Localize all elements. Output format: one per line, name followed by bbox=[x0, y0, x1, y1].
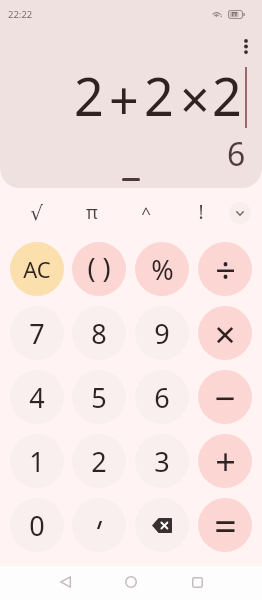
staticText: = bbox=[214, 498, 237, 552]
staticText: 0 bbox=[29, 507, 45, 544]
staticText: 5 bbox=[91, 379, 107, 416]
staticText: √ bbox=[30, 201, 43, 224]
button[interactable]: 8 bbox=[72, 306, 126, 360]
staticText: 2 bbox=[144, 60, 174, 131]
button[interactable]: × bbox=[198, 306, 252, 360]
button[interactable]: 0 bbox=[10, 498, 64, 552]
staticText: + bbox=[109, 64, 139, 135]
staticText: 7 bbox=[29, 315, 45, 352]
button[interactable]: 5 bbox=[72, 370, 126, 424]
button[interactable]: ^ bbox=[118, 189, 173, 235]
button[interactable]: 6 bbox=[135, 370, 189, 424]
staticText: 2 bbox=[212, 60, 242, 131]
staticText: 2 bbox=[91, 443, 107, 480]
button[interactable]: 3 bbox=[135, 434, 189, 488]
button[interactable]: 1 bbox=[10, 434, 64, 488]
staticText: 8 bbox=[91, 315, 107, 352]
staticText: % bbox=[151, 251, 174, 288]
staticText: 9 bbox=[154, 315, 170, 352]
button[interactable]: π bbox=[64, 189, 119, 235]
staticText: ^ bbox=[141, 201, 151, 224]
staticText: 4 bbox=[29, 379, 45, 416]
button[interactable]: 9 bbox=[135, 306, 189, 360]
button[interactable]: Expand keypad bbox=[229, 202, 251, 224]
button[interactable]: = bbox=[198, 498, 252, 552]
button[interactable]: 4 bbox=[10, 370, 64, 424]
button[interactable]: + bbox=[198, 434, 252, 488]
staticText: 1 bbox=[29, 443, 45, 480]
staticText: ÷ bbox=[215, 245, 236, 294]
button[interactable]: ! bbox=[173, 189, 228, 235]
staticText: AC bbox=[23, 254, 51, 284]
staticText: ( ) bbox=[87, 249, 111, 286]
staticText: + bbox=[215, 437, 236, 486]
button[interactable]: 7 bbox=[10, 306, 64, 360]
staticText: 3 bbox=[154, 443, 170, 480]
button[interactable]: √ bbox=[9, 189, 64, 235]
button[interactable]: ( ) bbox=[72, 242, 126, 296]
button[interactable]: Home bbox=[112, 563, 150, 600]
button[interactable]: 2 bbox=[72, 434, 126, 488]
button[interactable]: Back bbox=[46, 563, 84, 600]
staticText: 6 bbox=[227, 132, 246, 176]
button[interactable]: Recent apps bbox=[178, 563, 216, 600]
button[interactable]: Backspace bbox=[135, 498, 189, 552]
button[interactable]: AC bbox=[10, 242, 64, 296]
button[interactable]: − bbox=[198, 370, 252, 424]
button[interactable]: More options bbox=[232, 32, 260, 60]
button[interactable]: ÷ bbox=[198, 242, 252, 296]
staticText: × bbox=[214, 308, 236, 358]
staticText: − bbox=[214, 372, 236, 422]
staticText: π bbox=[86, 200, 98, 225]
staticText: 22:22 bbox=[8, 8, 33, 21]
button[interactable]: % bbox=[135, 242, 189, 296]
button[interactable]: Drag handle bbox=[122, 178, 140, 181]
staticText: 6 bbox=[154, 379, 170, 416]
staticText: 2 bbox=[74, 60, 104, 131]
staticText: × bbox=[180, 63, 210, 134]
button[interactable]: Decimal separator bbox=[72, 498, 126, 552]
staticText: ! bbox=[198, 199, 204, 225]
